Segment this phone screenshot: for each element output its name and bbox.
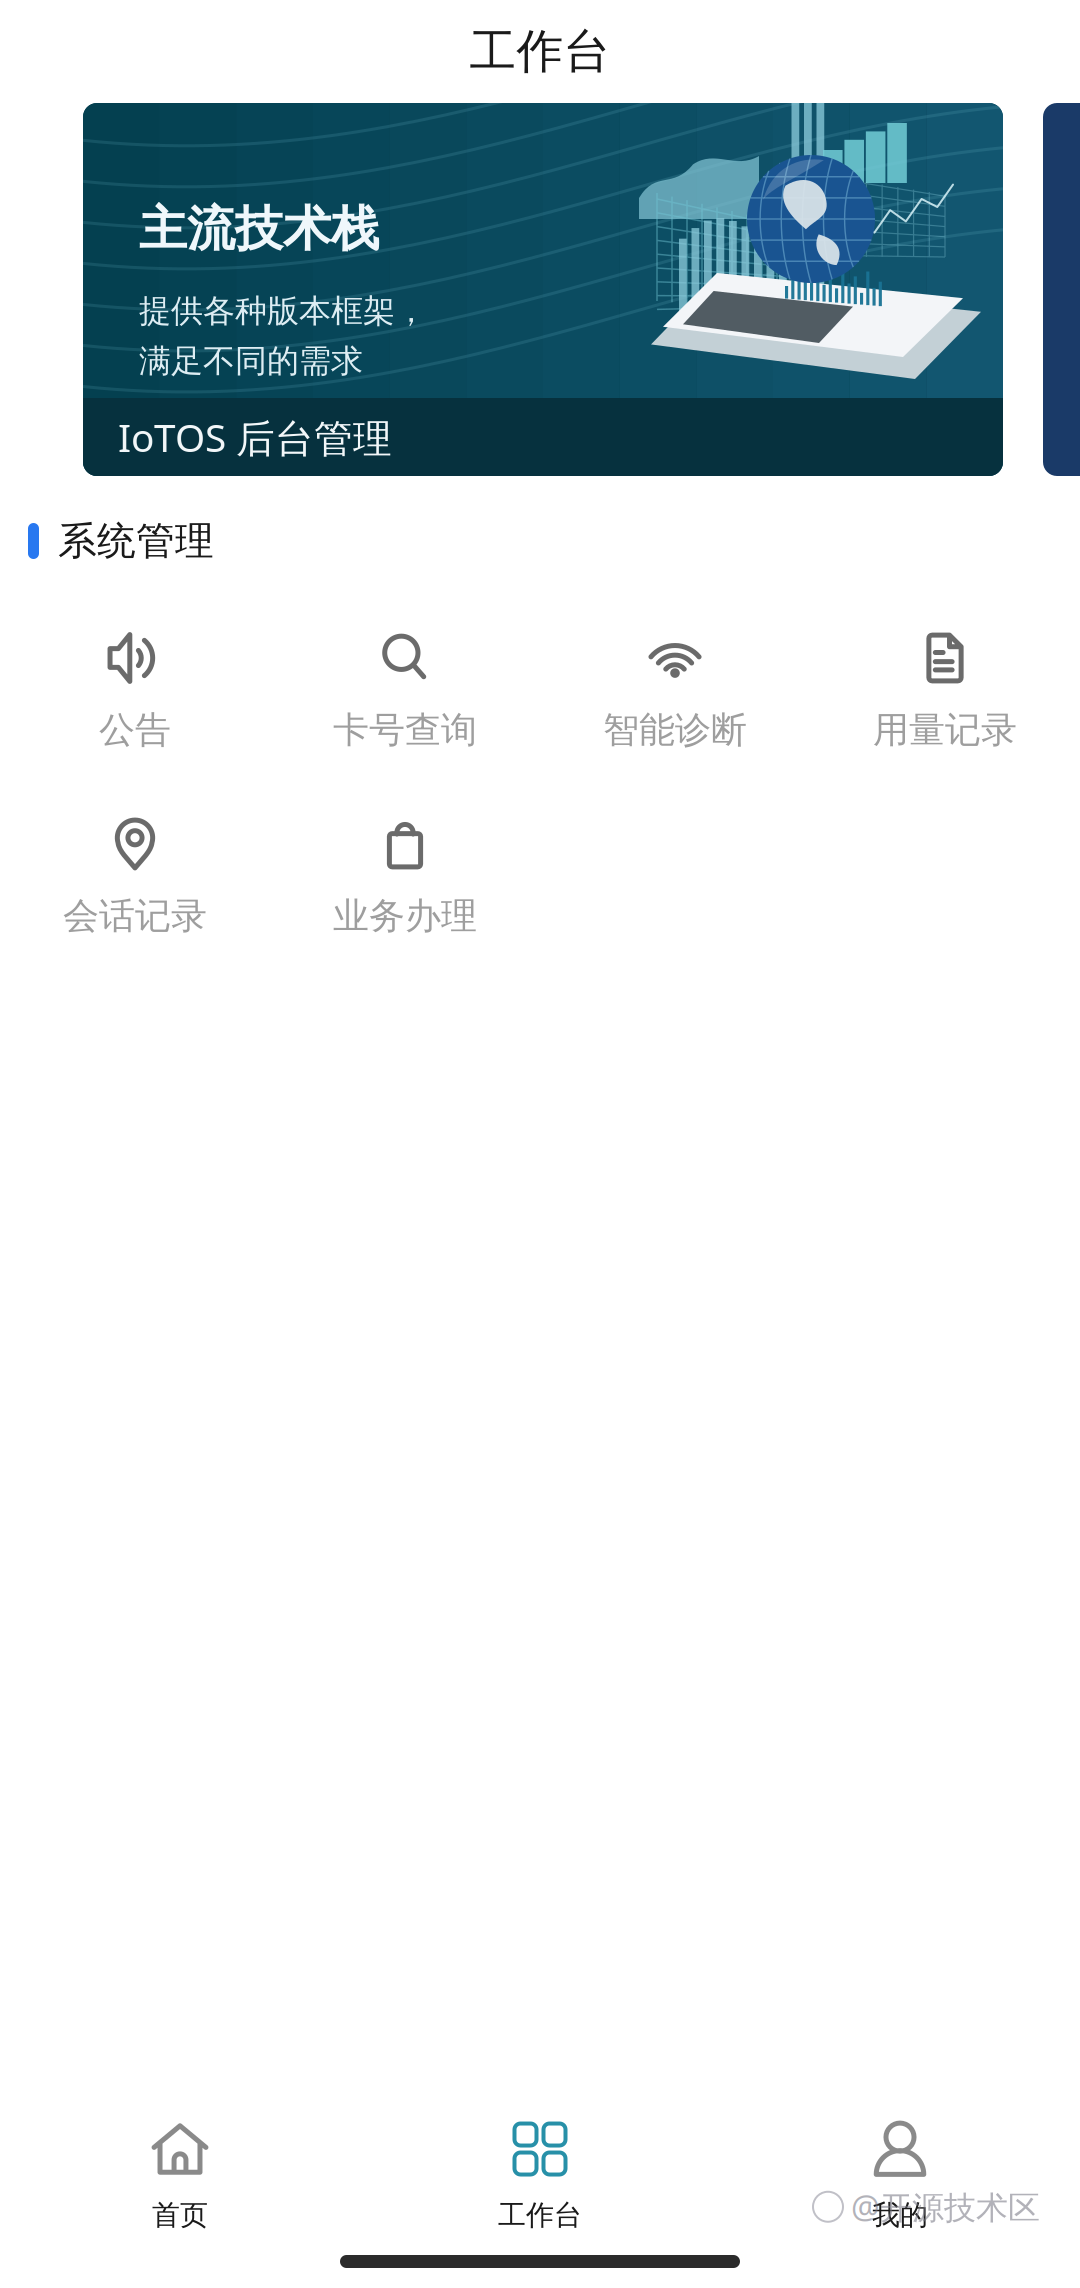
staticText: 公告 [99,708,171,752]
button[interactable]: 用量记录 [810,606,1080,792]
button[interactable]: 卡号查询 [270,606,540,792]
staticText: 我的 [872,2198,928,2232]
staticText: 首页 [152,2198,208,2232]
staticText: 业务办理 [333,894,477,938]
staticText: 满足不同的需求 [139,341,363,381]
staticText: 工作台 [469,23,610,80]
button[interactable]: 首页 [0,2086,360,2252]
button[interactable]: 智能诊断 [540,606,810,792]
button[interactable]: 主流技术栈 [83,103,1003,476]
staticText: 提供各种版本框架， [139,291,427,331]
button[interactable]: 公告 [0,606,270,792]
staticText: 用量记录 [873,708,1017,752]
button[interactable]: 我的 [720,2086,1080,2252]
staticText: 系统管理 [58,517,214,565]
button[interactable]: 会话记录 [0,792,270,978]
staticText: 工作台 [498,2198,582,2232]
button[interactable]: 业务办理 [270,792,540,978]
staticText: 智能诊断 [603,708,747,752]
staticText: IoTOS 后台管理 [118,411,392,463]
staticText: 主流技术栈 [139,199,379,258]
button[interactable]: 工作台 [360,2086,720,2252]
staticText: 会话记录 [63,894,207,938]
staticText: 卡号查询 [333,708,477,752]
staticText: @开源技术区 [851,2185,1040,2228]
